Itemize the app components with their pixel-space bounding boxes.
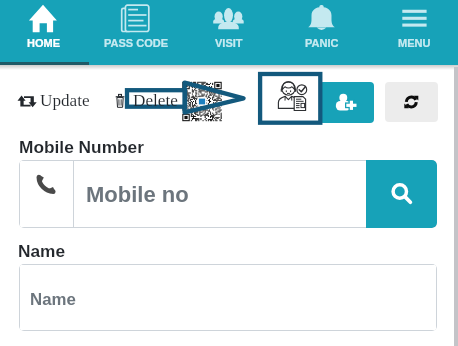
- button[interactable]: VISIT: [182, 0, 275, 65]
- staticText: VISIT: [215, 37, 243, 49]
- staticText: Mobile no: [86, 182, 189, 207]
- staticText: Update: [40, 91, 90, 110]
- staticText: Name: [30, 290, 76, 309]
- button[interactable]: Refresh: [385, 82, 438, 122]
- staticText: PANIC: [305, 37, 339, 49]
- button[interactable]: [14, 84, 92, 116]
- button[interactable]: Add visitor: [319, 82, 374, 123]
- button[interactable]: PASS CODE: [89, 0, 182, 65]
- button[interactable]: Search: [366, 160, 437, 228]
- staticText: Delete: [133, 91, 178, 110]
- button[interactable]: HOME: [0, 0, 89, 65]
- staticText: Mobile Number: [19, 137, 144, 156]
- button[interactable]: MENU: [368, 0, 458, 65]
- staticText: HOME: [27, 37, 60, 49]
- staticText: MENU: [398, 37, 431, 49]
- button[interactable]: Verified visitor: [262, 82, 318, 122]
- button[interactable]: [112, 84, 180, 116]
- button[interactable]: QR code: [182, 82, 222, 122]
- button[interactable]: PANIC: [275, 0, 368, 65]
- staticText: Name: [18, 241, 66, 260]
- staticText: PASS CODE: [104, 37, 168, 49]
